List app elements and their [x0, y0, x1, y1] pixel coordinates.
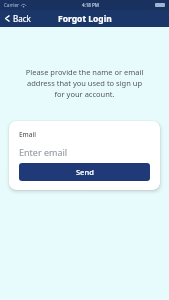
staticText: 4:18 PM — [82, 2, 99, 8]
staticText: Email — [19, 130, 37, 139]
button[interactable]: Send — [19, 163, 150, 181]
staticText: Enter email — [19, 146, 68, 158]
button[interactable]: Enter email — [19, 145, 150, 158]
staticText: Forgot Login — [58, 13, 112, 25]
other: Back — [4, 15, 11, 22]
staticText: Back — [13, 13, 31, 24]
staticText: Carrier — [4, 2, 19, 8]
staticText: Send — [76, 167, 94, 177]
staticText: Please provide the name or email address… — [21, 67, 148, 99]
button[interactable]: Back — [0, 10, 37, 27]
